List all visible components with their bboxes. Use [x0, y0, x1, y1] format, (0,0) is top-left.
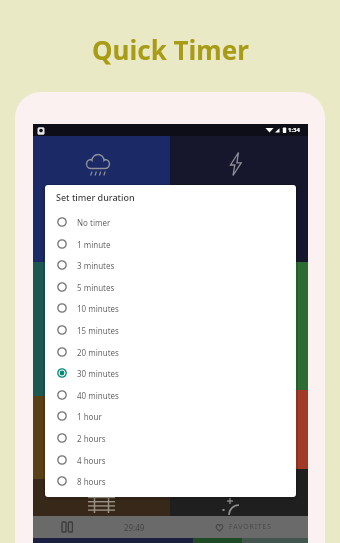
- button[interactable]: [33, 479, 170, 516]
- button[interactable]: 20 minutes: [53, 344, 287, 360]
- button[interactable]: 5 minutes: [53, 279, 287, 295]
- staticText: 8 hours: [77, 476, 106, 487]
- button[interactable]: [170, 262, 308, 390]
- button[interactable]: [33, 396, 170, 479]
- staticText: 4 hours: [77, 455, 106, 466]
- button[interactable]: 2 hours: [53, 430, 287, 446]
- staticText: 20 minutes: [77, 347, 119, 358]
- button[interactable]: 8 hours: [53, 473, 287, 489]
- staticText: 40 minutes: [77, 390, 119, 401]
- button[interactable]: [170, 390, 308, 469]
- staticText: 15 minutes: [77, 325, 119, 336]
- button[interactable]: 3 minutes: [53, 257, 287, 273]
- staticText: 10 minutes: [77, 303, 119, 314]
- staticText: 30 minutes: [77, 368, 119, 379]
- staticText: 1 hour: [77, 411, 102, 422]
- staticText: FAVORITES: [229, 522, 272, 532]
- button[interactable]: [170, 136, 308, 262]
- button[interactable]: 1 hour: [53, 408, 287, 424]
- button[interactable]: 40 minutes: [53, 387, 287, 403]
- button[interactable]: 30 minutes: [53, 365, 287, 381]
- button[interactable]: No timer: [53, 214, 287, 230]
- staticText: 29:49: [124, 522, 145, 533]
- button[interactable]: 15 minutes: [53, 322, 287, 338]
- staticText: No timer: [77, 217, 111, 228]
- button[interactable]: 10 minutes: [53, 300, 287, 316]
- button[interactable]: 1 minute: [53, 236, 287, 252]
- staticText: Set timer duration: [56, 191, 135, 203]
- staticText: 5 minutes: [77, 282, 115, 293]
- staticText: 3 minutes: [77, 260, 115, 271]
- button[interactable]: 4 hours: [53, 452, 287, 468]
- button[interactable]: [46, 516, 87, 538]
- staticText: 1 minute: [77, 239, 111, 250]
- staticText: 1:34: [288, 126, 300, 134]
- button[interactable]: FAVORITES: [193, 516, 293, 538]
- button[interactable]: [33, 262, 170, 396]
- staticText: 2 hours: [77, 433, 106, 444]
- staticText: Quick Timer: [92, 32, 249, 67]
- button[interactable]: [170, 469, 308, 516]
- button[interactable]: [33, 136, 170, 262]
- button[interactable]: 29:49: [101, 516, 167, 538]
